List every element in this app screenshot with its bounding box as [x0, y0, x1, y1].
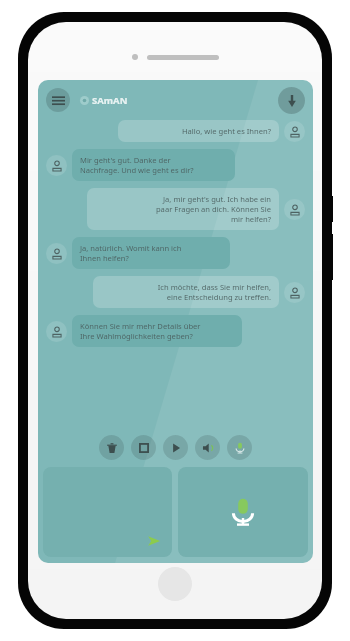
button[interactable]: Delete: [99, 435, 124, 460]
staticText: Ich möchte, dass Sie mir helfen, eine En…: [101, 282, 271, 302]
button[interactable]: Können Sie mir mehr Details über Ihre Wa…: [72, 315, 242, 347]
button[interactable]: Agent avatar: [46, 321, 67, 342]
staticText: Ja, natürlich. Womit kann ich Ihnen helf…: [80, 243, 222, 263]
button[interactable]: Ja, natürlich. Womit kann ich Ihnen helf…: [72, 237, 230, 269]
button[interactable]: Stop: [131, 435, 156, 460]
button[interactable]: Ja, mir geht's gut. Ich habe ein paar Fr…: [87, 188, 279, 230]
staticText: SAmAN: [92, 94, 128, 107]
button[interactable]: Mir geht's gut. Danke der Nachfrage. Und…: [72, 149, 235, 181]
button[interactable]: Agent avatar: [46, 155, 67, 176]
button[interactable]: Send: [146, 533, 162, 549]
button[interactable]: Menu: [46, 88, 70, 112]
button[interactable]: Send: [43, 467, 172, 557]
button[interactable]: Download: [278, 87, 305, 114]
staticText: Können Sie mir mehr Details über Ihre Wa…: [80, 321, 234, 341]
button[interactable]: Record voice: [178, 467, 308, 557]
button[interactable]: Hallo, wie geht es Ihnen?: [118, 120, 279, 142]
button[interactable]: Agent avatar: [46, 243, 67, 264]
button[interactable]: Play: [163, 435, 188, 460]
staticText: Ja, mir geht's gut. Ich habe ein paar Fr…: [95, 194, 271, 224]
button[interactable]: User avatar: [284, 199, 305, 220]
button[interactable]: User avatar: [284, 282, 305, 303]
button[interactable]: Ich möchte, dass Sie mir helfen, eine En…: [93, 276, 279, 308]
staticText: Mir geht's gut. Danke der Nachfrage. Und…: [80, 155, 227, 175]
staticText: Hallo, wie geht es Ihnen?: [126, 126, 271, 136]
button[interactable]: User avatar: [284, 121, 305, 142]
button[interactable]: Speaker: [195, 435, 220, 460]
button[interactable]: Microphone: [227, 435, 252, 460]
